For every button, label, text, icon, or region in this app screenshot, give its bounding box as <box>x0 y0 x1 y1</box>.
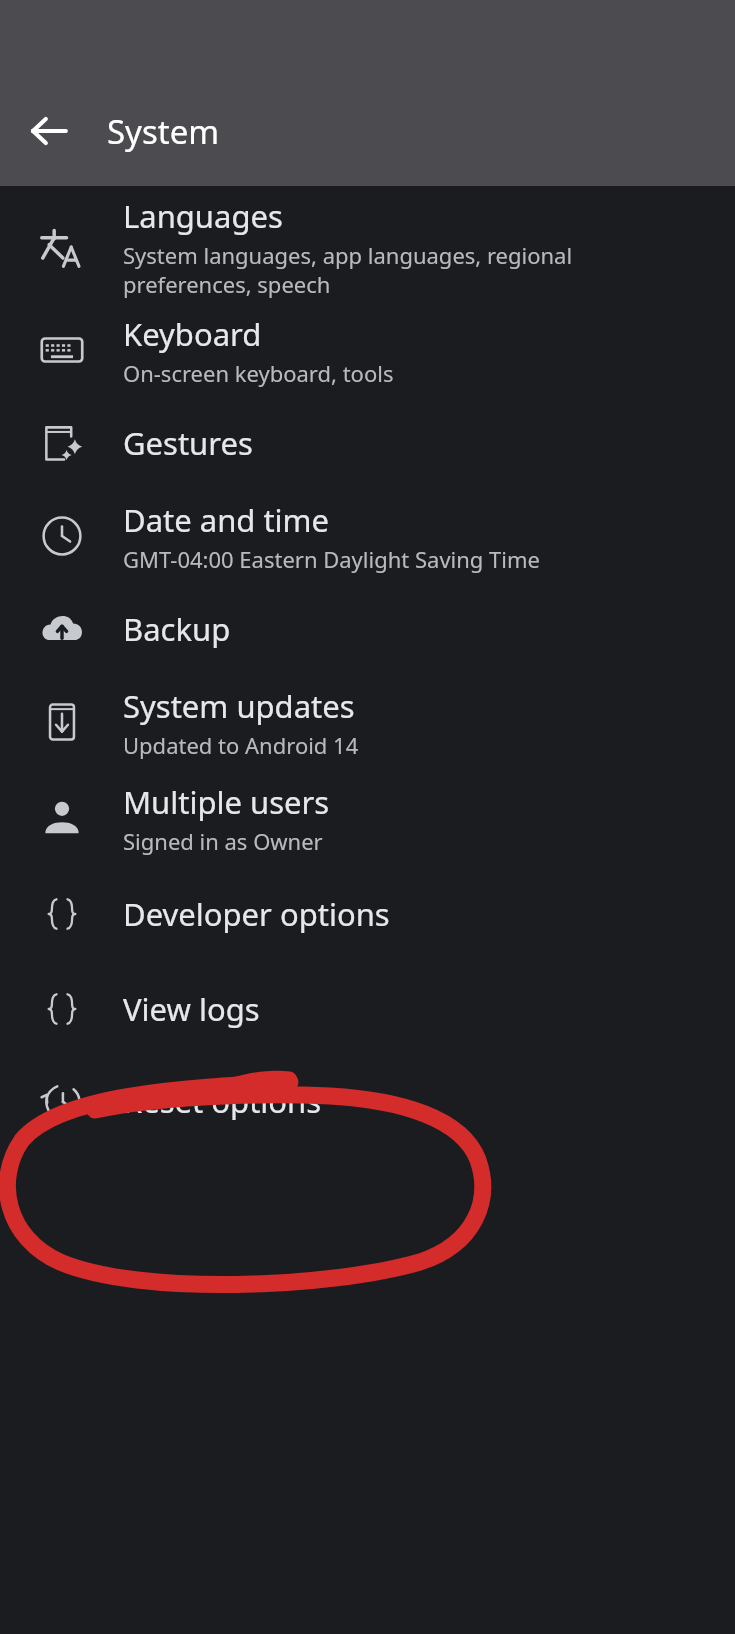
button[interactable]: Back <box>18 100 80 162</box>
staticText: Updated to Android 14 <box>123 730 359 760</box>
staticText: System updates <box>123 685 355 727</box>
staticText: Reset options <box>123 1080 322 1122</box>
button[interactable]: Reset options <box>0 1056 735 1146</box>
staticText: Keyboard <box>123 313 262 355</box>
staticText: View logs <box>123 988 260 1030</box>
button[interactable]: View logs <box>0 962 735 1056</box>
staticText: Languages <box>123 195 283 237</box>
staticText: Developer options <box>123 893 390 935</box>
button[interactable]: Gestures <box>0 398 735 488</box>
button[interactable]: Languages <box>0 192 735 302</box>
button[interactable]: Keyboard <box>0 302 735 398</box>
staticText: Multiple users <box>123 781 330 823</box>
staticText: Gestures <box>123 422 253 464</box>
staticText: System languages, app languages, regiona… <box>123 240 573 299</box>
button[interactable]: Backup <box>0 584 735 674</box>
staticText: Date and time <box>123 499 330 541</box>
staticText: Signed in as Owner <box>123 826 323 856</box>
button[interactable]: Date and time <box>0 488 735 584</box>
staticText: GMT-04:00 Eastern Daylight Saving Time <box>123 544 540 574</box>
staticText: Backup <box>123 608 231 650</box>
button[interactable]: System updates <box>0 674 735 770</box>
button[interactable]: Developer options <box>0 866 735 962</box>
staticText: System <box>107 109 220 154</box>
staticText: On-screen keyboard, tools <box>123 358 394 388</box>
button[interactable]: Multiple users <box>0 770 735 866</box>
